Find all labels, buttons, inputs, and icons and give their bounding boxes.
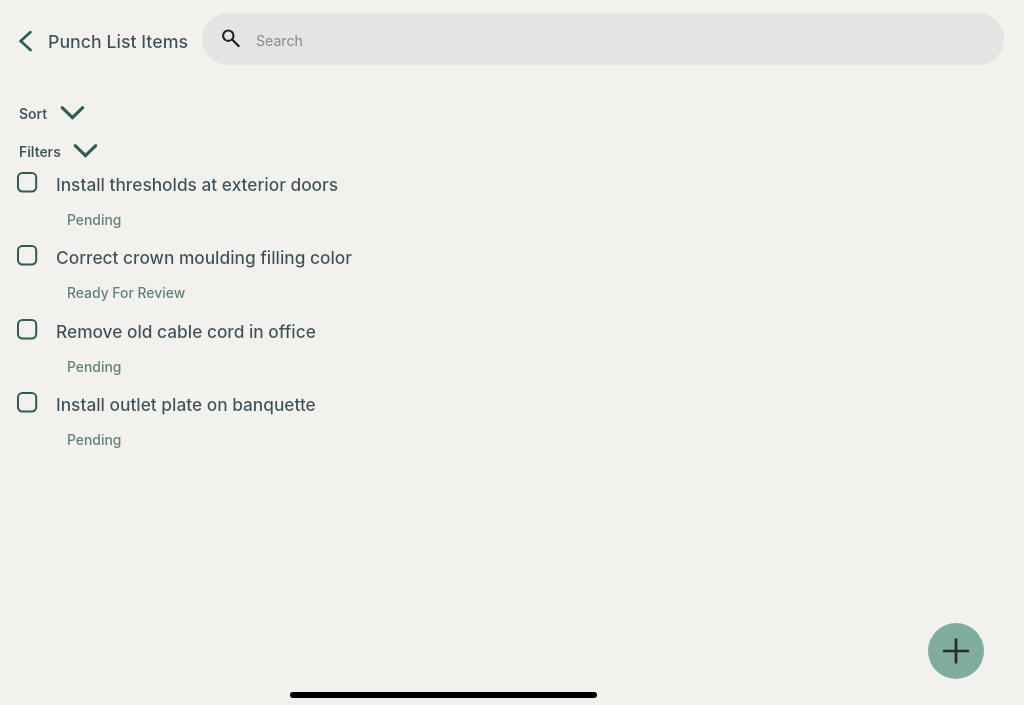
button[interactable]: Search bbox=[202, 13, 1004, 65]
staticText: Filters bbox=[19, 144, 61, 161]
button[interactable]: Install outlet plate on banquette bbox=[0, 384, 1024, 450]
staticText: Correct crown moulding filling color bbox=[56, 247, 352, 268]
staticText: Pending bbox=[67, 359, 122, 376]
staticText: Pending bbox=[67, 212, 122, 229]
staticText: Pending bbox=[67, 432, 122, 449]
button[interactable]: Remove old cable cord in office bbox=[0, 311, 1024, 377]
button[interactable]: Add punch list item bbox=[928, 623, 984, 679]
button[interactable]: Filters bbox=[14, 137, 103, 167]
button[interactable]: Install thresholds at exterior doors bbox=[0, 164, 1024, 230]
staticText: Sort bbox=[19, 106, 48, 123]
button[interactable]: Back bbox=[1, 17, 49, 65]
staticText: Search bbox=[256, 32, 303, 49]
staticText: Remove old cable cord in office bbox=[56, 321, 316, 342]
button[interactable]: Correct crown moulding filling color bbox=[0, 237, 1024, 303]
staticText: Punch List Items bbox=[48, 31, 188, 52]
staticText: Ready For Review bbox=[67, 285, 186, 302]
staticText: Install thresholds at exterior doors bbox=[56, 174, 339, 195]
button[interactable]: Sort bbox=[14, 99, 90, 129]
staticText: Install outlet plate on banquette bbox=[56, 394, 316, 415]
